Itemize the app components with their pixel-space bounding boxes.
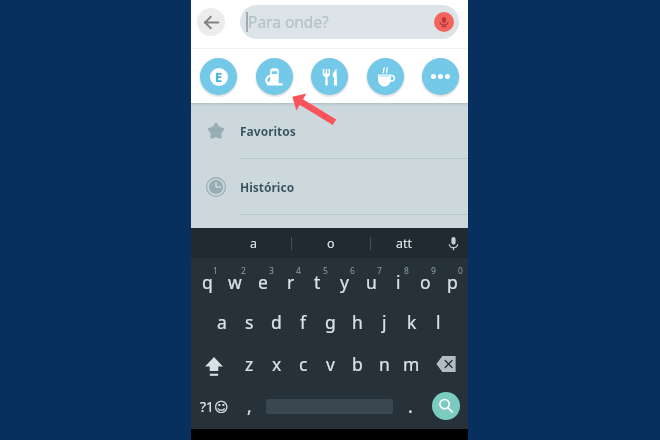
staticText: ?1☺ [200,397,229,416]
staticText: 8 [404,265,409,277]
staticText: a [217,310,227,334]
staticText: e [258,270,268,294]
staticText: att [396,235,413,252]
button[interactable]: q [193,259,221,301]
button[interactable]: z [235,343,263,385]
button[interactable]: d [263,301,290,343]
button[interactable]: a [217,228,291,258]
staticText: b [352,352,363,376]
staticText: t [314,270,321,294]
staticText: z [245,352,254,376]
button[interactable]: . [395,385,425,427]
staticText: s [245,310,254,334]
button[interactable]: Voice search [434,12,454,32]
button[interactable]: i [385,259,412,301]
button[interactable]: t [304,259,331,301]
button[interactable]: Restaurants [311,58,348,95]
staticText: Favoritos [240,123,296,139]
staticText: m [403,352,420,376]
staticText: x [272,352,282,376]
staticText: 6 [350,265,355,277]
staticText: 7 [377,265,382,277]
button[interactable]: a [208,301,236,343]
button[interactable]: x [263,343,290,385]
button[interactable]: Backspace [425,343,466,385]
staticText: E [215,68,223,86]
button[interactable]: v [317,343,344,385]
button[interactable]: s [236,301,263,343]
button[interactable]: Electric charging [200,58,237,95]
button[interactable]: Favoritos [191,103,468,159]
staticText: y [340,270,349,294]
staticText: 5 [323,265,328,277]
button[interactable]: l [425,301,452,343]
staticText: c [299,352,308,376]
button[interactable]: att [371,228,438,258]
staticText: a [250,235,258,252]
button[interactable]: More categories [422,58,459,95]
button[interactable]: Coffee [367,58,404,95]
button[interactable]: ?1☺ [193,385,235,427]
staticText: f [300,310,307,334]
staticText: 9 [431,265,436,277]
staticText: n [379,352,390,376]
button[interactable]: Histórico [191,159,468,215]
button[interactable]: y [331,259,358,301]
staticText: Histórico [240,179,295,195]
button[interactable]: Gas stations [256,58,293,95]
staticText: o [327,235,335,252]
button[interactable]: Para onde? [240,5,459,39]
staticText: k [407,310,417,334]
button[interactable]: c [290,343,317,385]
button[interactable]: e [249,259,277,301]
staticText: g [325,310,336,334]
button[interactable]: Shift [193,343,235,385]
button[interactable]: n [371,343,398,385]
staticText: v [326,352,335,376]
staticText: w [228,270,242,294]
button[interactable]: o [292,228,370,258]
button[interactable]: Back [197,8,225,36]
button[interactable]: h [344,301,371,343]
staticText: , [247,394,252,418]
staticText: 0 [458,265,463,277]
button[interactable]: r [277,259,304,301]
staticText: i [396,270,401,294]
staticText: p [447,270,458,294]
button[interactable]: Voice input [438,228,468,258]
staticText: h [352,310,363,334]
staticText: l [436,310,441,334]
staticText: . [408,394,413,418]
button[interactable]: f [290,301,317,343]
staticText: 3 [269,265,274,277]
button[interactable]: j [371,301,398,343]
button[interactable]: w [221,259,249,301]
staticText: j [382,310,387,334]
button[interactable]: Search [425,385,466,427]
button[interactable] [264,385,395,427]
staticText: q [202,270,213,294]
button[interactable]: p [439,259,466,301]
staticText: d [271,310,282,334]
button[interactable]: k [398,301,425,343]
staticText: r [287,270,295,294]
staticText: u [366,270,377,294]
button[interactable]: , [235,385,264,427]
button[interactable]: g [317,301,344,343]
staticText: 4 [296,265,301,277]
staticText: Para onde? [248,11,329,32]
staticText: 1 [213,265,218,277]
button[interactable]: o [412,259,439,301]
staticText: 2 [241,265,246,277]
button[interactable]: m [398,343,425,385]
button[interactable]: u [358,259,385,301]
staticText: o [420,270,431,294]
button[interactable]: b [344,343,371,385]
